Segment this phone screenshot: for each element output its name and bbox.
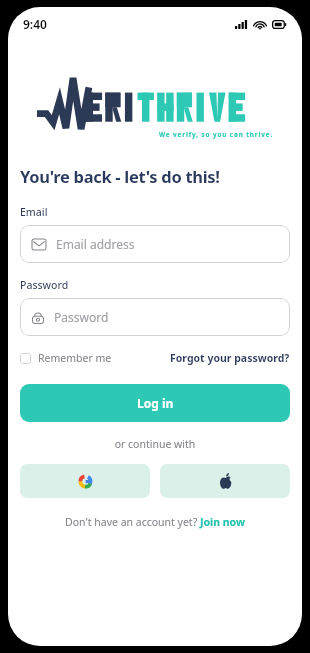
button[interactable]: Password [20,298,290,336]
button[interactable]: Join now [200,515,245,529]
button[interactable]: Continue with Apple [160,464,290,498]
button[interactable]: Log in [20,384,290,422]
button[interactable]: Forgot your password? [170,349,290,367]
staticText: We verify, so you can thrive. [159,130,274,139]
staticText: Password [20,278,69,292]
staticText: or continue with [20,437,290,451]
button[interactable]: Remember me [20,349,112,367]
staticText: Password [54,309,109,325]
staticText: 9:40 [23,16,47,32]
staticText: Forgot your password? [170,351,290,365]
staticText: Email address [56,236,135,252]
staticText: Email [20,205,48,219]
button[interactable]: Email address [20,225,290,263]
staticText: Don't have an account yet? [65,515,200,529]
staticText: Join now [200,515,245,529]
staticText: Log in [137,395,174,411]
staticText: You're back - let's do this! [20,165,220,187]
button[interactable]: Continue with Google [20,464,150,498]
staticText: Remember me [38,351,112,365]
